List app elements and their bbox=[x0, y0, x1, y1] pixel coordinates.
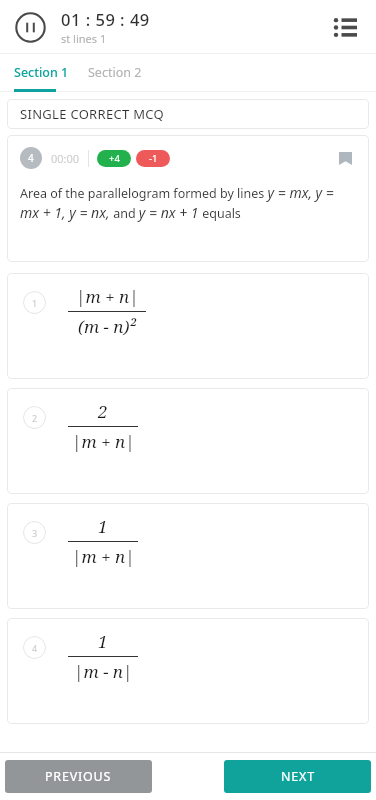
staticText: |m + n| bbox=[72, 545, 135, 568]
button[interactable]: NEXT bbox=[224, 760, 371, 793]
staticText: 3 bbox=[32, 527, 38, 539]
button[interactable]: SINGLE CORRECT MCQ bbox=[7, 99, 369, 129]
staticText: +4 bbox=[109, 152, 120, 165]
button[interactable]: 1 bbox=[7, 273, 369, 379]
staticText: 01 : 59 : 49 bbox=[61, 8, 150, 30]
staticText: PREVIOUS bbox=[45, 768, 112, 785]
button[interactable]: PREVIOUS bbox=[5, 760, 152, 793]
button[interactable]: Pause timer bbox=[11, 8, 49, 46]
staticText: 4 bbox=[32, 642, 38, 654]
staticText: Section 1 bbox=[14, 64, 69, 81]
button[interactable]: 2 bbox=[7, 388, 369, 494]
staticText: |m + n| bbox=[72, 430, 135, 453]
staticText: 1 bbox=[98, 515, 108, 538]
button[interactable]: Section 1 bbox=[14, 64, 69, 87]
button[interactable]: Bookmark bbox=[334, 147, 356, 169]
staticText: 00:00 bbox=[51, 151, 80, 166]
staticText: 2 bbox=[32, 412, 38, 424]
button[interactable]: 4 bbox=[7, 618, 369, 724]
staticText: st lines 1 bbox=[61, 31, 107, 46]
button[interactable]: 3 bbox=[7, 503, 369, 609]
button[interactable]: Section 2 bbox=[88, 64, 142, 87]
staticText: -1 bbox=[149, 152, 158, 165]
staticText: 1 bbox=[98, 630, 108, 653]
staticText: 4 bbox=[28, 151, 34, 165]
staticText: Section 2 bbox=[88, 64, 142, 81]
staticText: 1 bbox=[32, 297, 38, 309]
staticText: SINGLE CORRECT MCQ bbox=[20, 105, 164, 123]
staticText: |m + n| bbox=[76, 285, 139, 308]
staticText: Area of the parallelogram formed by line… bbox=[20, 183, 356, 222]
staticText: 2 bbox=[98, 400, 108, 423]
staticText: NEXT bbox=[281, 768, 315, 785]
button[interactable]: Question list bbox=[325, 7, 365, 47]
staticText: (m − n)² bbox=[78, 315, 137, 338]
staticText: |m − n| bbox=[74, 660, 133, 683]
